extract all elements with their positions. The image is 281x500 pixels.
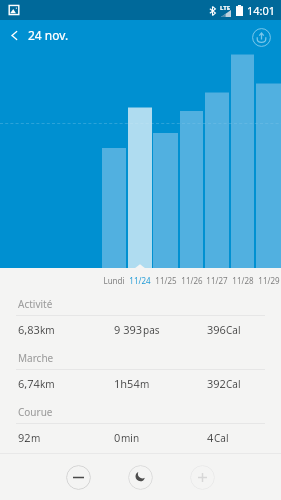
staticText: Marche (18, 351, 54, 365)
staticText: 24 nov. (28, 27, 69, 43)
staticText: LTE (220, 4, 231, 12)
staticText: 6,83 (18, 322, 40, 337)
staticText: 6,74 (18, 376, 40, 391)
staticText: m (140, 377, 150, 391)
staticText: 11/29 (258, 275, 280, 286)
button[interactable]: Marche (0, 341, 281, 395)
staticText: Lundi (103, 275, 125, 286)
button[interactable]: Share (250, 26, 272, 48)
staticText: 11/27 (206, 275, 228, 286)
button[interactable]: Next day (190, 465, 215, 490)
staticText: min (121, 431, 140, 445)
button[interactable]: Sleep mode (128, 465, 153, 490)
staticText: 11/28 (232, 275, 254, 286)
staticText: 392 (207, 376, 226, 391)
staticText: Cal (214, 431, 229, 445)
staticText: 11/25 (155, 275, 177, 286)
button[interactable]: Activité (0, 287, 281, 341)
staticText: 4 (207, 430, 214, 445)
staticText: 11/24 (129, 275, 151, 286)
staticText: 396 (207, 322, 226, 337)
staticText: 14:01 (247, 3, 276, 18)
staticText: Cal (226, 377, 241, 391)
staticText: 1h54 (114, 376, 140, 391)
staticText: Cal (226, 323, 241, 337)
staticText: m (31, 431, 41, 445)
button[interactable]: Back (2, 23, 26, 47)
staticText: 92 (18, 430, 31, 445)
staticText: km (40, 323, 55, 337)
staticText: Courue (18, 405, 53, 419)
staticText: 0 (114, 430, 121, 445)
button[interactable]: Previous day (66, 465, 91, 490)
staticText: 9 393 (114, 322, 143, 337)
staticText: km (40, 377, 55, 391)
staticText: 11/26 (181, 275, 203, 286)
button[interactable]: Courue (0, 395, 281, 449)
staticText: Activité (18, 297, 53, 311)
staticText: pas (143, 323, 160, 337)
